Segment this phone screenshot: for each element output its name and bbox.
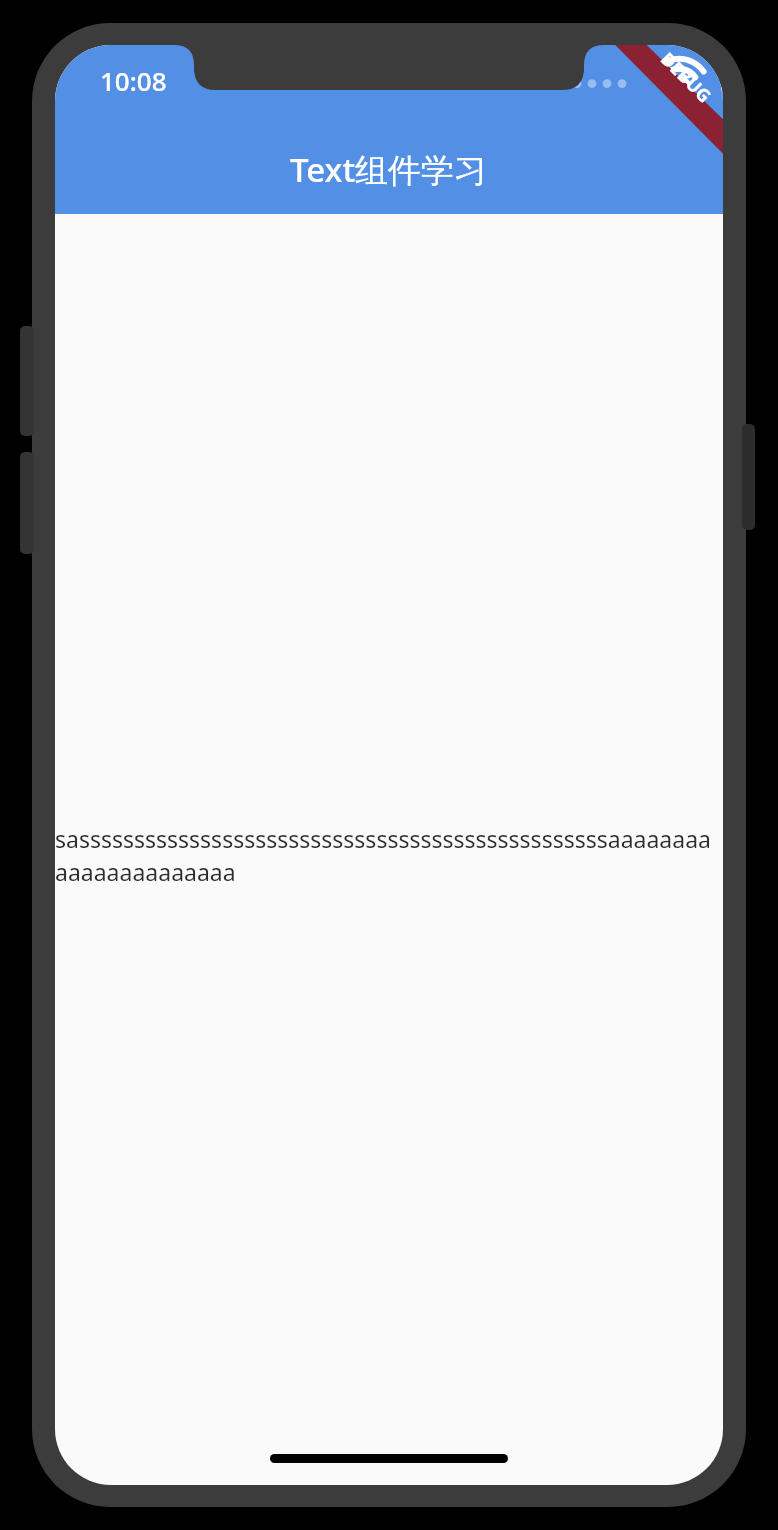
staticText: Text组件学习 xyxy=(290,147,488,192)
staticText: sassssssssssssssssssssssssssssssssssssss… xyxy=(55,823,723,888)
button[interactable]: Volume up xyxy=(20,326,34,436)
staticText: DEBUG xyxy=(655,47,717,108)
button[interactable]: Home indicator xyxy=(270,1454,508,1463)
button[interactable]: Volume down xyxy=(20,452,34,554)
staticText: 10:08 xyxy=(100,63,167,98)
button[interactable]: Power xyxy=(742,424,755,530)
